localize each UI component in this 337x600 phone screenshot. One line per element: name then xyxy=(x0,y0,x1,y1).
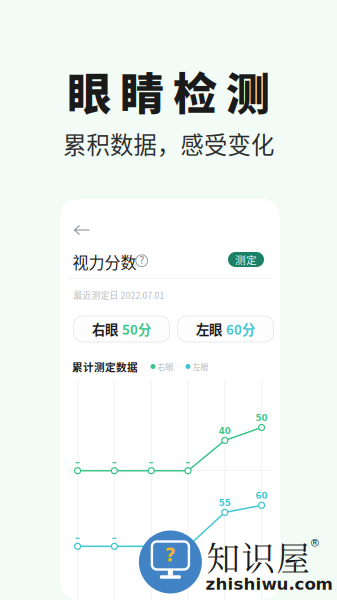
staticText: 40 xyxy=(219,426,231,436)
staticText: ? xyxy=(165,544,176,566)
staticText: 右眼 xyxy=(92,319,118,339)
button[interactable]: Help xyxy=(135,254,149,268)
staticText: zhishiwu.com xyxy=(205,574,332,594)
staticText: 最近测定日 2022.07.01 xyxy=(73,289,164,301)
staticText: 累积数据，感受变化 xyxy=(63,127,274,160)
button[interactable]: Back xyxy=(66,217,96,243)
staticText: 50分 xyxy=(122,319,151,339)
staticText: 累计测定数据 xyxy=(72,359,138,374)
staticText: 55 xyxy=(219,498,231,508)
staticText: ? xyxy=(139,255,144,266)
staticText: 左眼 xyxy=(192,361,208,372)
staticText: 视力分数 xyxy=(72,250,136,273)
staticText: ® xyxy=(309,537,320,549)
staticText: 测定 xyxy=(235,252,257,267)
staticText: 60分 xyxy=(226,319,255,339)
staticText: 眼睛检测 xyxy=(67,59,270,123)
staticText: 50 xyxy=(256,413,268,423)
button[interactable]: 右眼 xyxy=(73,316,169,342)
staticText: 左眼 xyxy=(196,319,222,339)
staticText: 右眼 xyxy=(157,361,173,372)
button[interactable]: 测定 xyxy=(228,252,264,267)
staticText: 60 xyxy=(256,491,268,501)
button[interactable]: 左眼 xyxy=(177,316,273,342)
staticText: 知识屋 xyxy=(206,532,309,580)
